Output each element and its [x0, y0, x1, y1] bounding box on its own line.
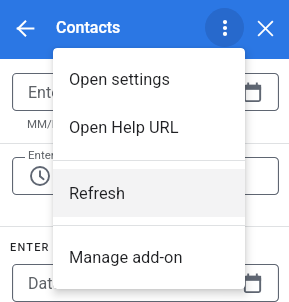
staticText: Date — [28, 274, 61, 293]
staticText: ENTER A DATE — [10, 241, 98, 254]
button[interactable]: Close — [248, 11, 282, 45]
staticText: Open Help URL — [69, 118, 179, 137]
button[interactable]: Refresh — [53, 169, 245, 217]
button[interactable]: Open Help URL — [53, 103, 245, 151]
button[interactable]: Navigate up — [8, 11, 42, 45]
button[interactable]: Manage add-on — [53, 233, 245, 281]
button[interactable]: More options — [205, 8, 244, 47]
staticText: Contacts — [56, 18, 121, 37]
staticText: Enter date — [28, 83, 101, 102]
button[interactable]: Open settings — [53, 55, 245, 103]
staticText: Open settings — [69, 70, 170, 89]
button[interactable]: Enter date — [12, 73, 279, 111]
staticText: Enter time — [28, 148, 81, 161]
button[interactable]: Date — [12, 264, 279, 302]
staticText: MM/DD/YYYY — [27, 117, 100, 130]
staticText: Manage add-on — [69, 248, 183, 267]
staticText: Refresh — [69, 184, 126, 203]
button[interactable] — [12, 157, 279, 195]
